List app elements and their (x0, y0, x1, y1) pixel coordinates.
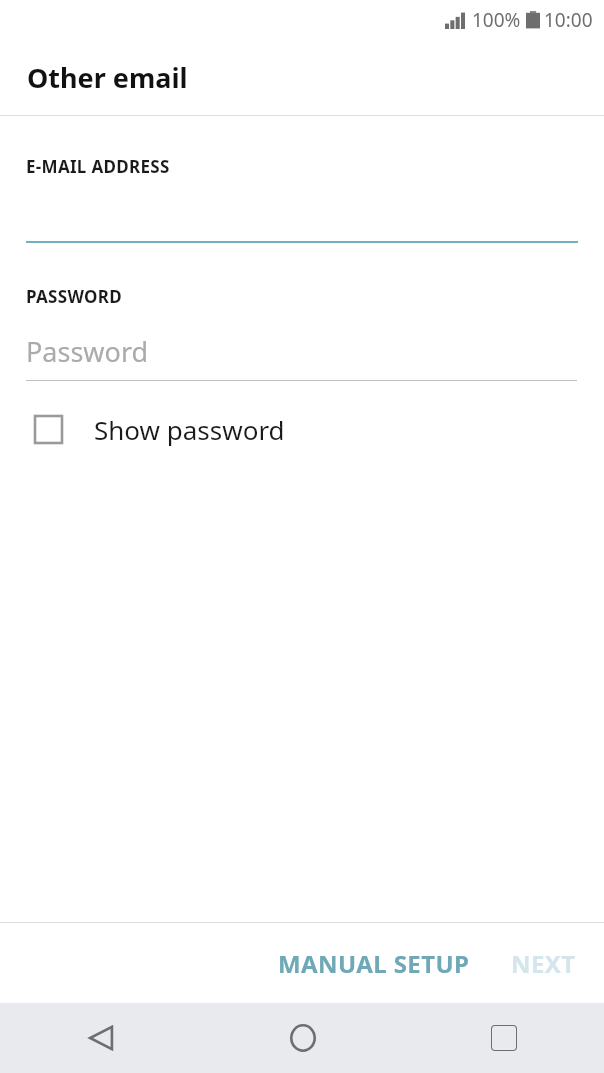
staticText: E-MAIL ADDRESS (26, 155, 170, 178)
staticText: Other email (27, 59, 188, 96)
staticText: 10:00 (544, 7, 593, 33)
button[interactable]: Home (202, 1003, 403, 1073)
button[interactable]: Back (0, 1003, 202, 1073)
staticText: PASSWORD (26, 285, 122, 308)
button[interactable]: Password (0, 333, 604, 381)
button[interactable]: Show password (0, 406, 604, 453)
staticText: MANUAL SETUP (278, 947, 470, 980)
button[interactable]: Recents (403, 1003, 604, 1073)
staticText: NEXT (511, 947, 576, 980)
staticText: Show password (94, 412, 285, 447)
button[interactable]: NEXT (499, 935, 588, 992)
staticText: 100% (472, 7, 521, 33)
button[interactable]: MANUAL SETUP (266, 935, 482, 992)
staticText: Password (26, 333, 149, 370)
